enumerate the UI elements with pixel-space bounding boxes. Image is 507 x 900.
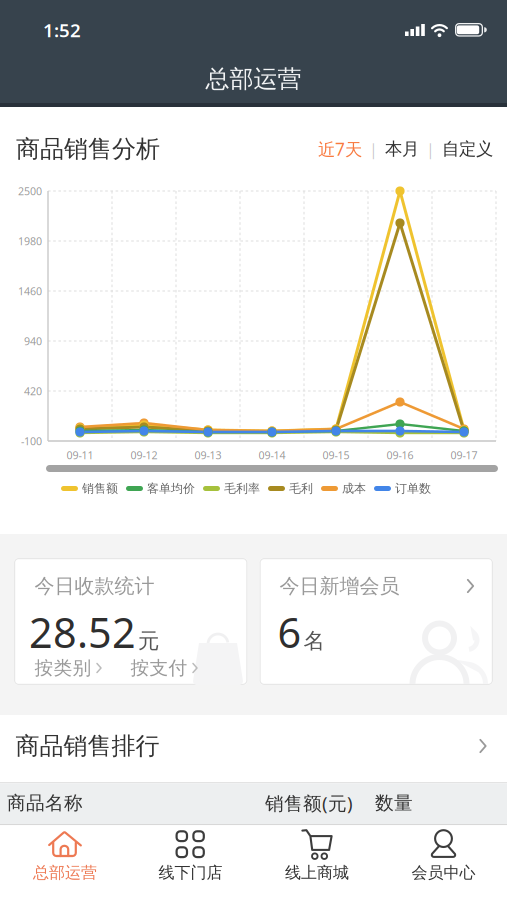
staticText: 940 — [24, 334, 42, 348]
button[interactable]: 商品销售排行 — [0, 715, 507, 777]
staticText: 2500 — [18, 184, 42, 198]
staticText: 6 — [277, 605, 301, 659]
staticText: 28.52 — [29, 605, 136, 659]
staticText: 本月 — [385, 138, 419, 160]
staticText: 09-15 — [322, 448, 349, 462]
button[interactable]: 线下门店 — [127, 825, 253, 899]
staticText: 自定义 — [442, 138, 493, 160]
staticText: 今日收款统计 — [34, 574, 154, 598]
staticText: 按类别 — [34, 656, 91, 679]
button[interactable]: 本月 — [385, 138, 419, 160]
button[interactable]: 今日新增会员 — [259, 558, 493, 685]
staticText: 线上商城 — [285, 863, 349, 883]
button[interactable]: 线上商城 — [254, 825, 380, 899]
staticText: 会员中心 — [411, 863, 475, 883]
button[interactable]: 自定义 — [442, 138, 493, 160]
staticText: 名 — [303, 628, 324, 654]
staticText: 按支付 — [130, 656, 187, 679]
staticText: 销售额(元) — [265, 791, 353, 815]
button[interactable]: 总部运营 — [2, 825, 128, 899]
staticText: | — [426, 138, 435, 160]
button[interactable]: 会员中心 — [380, 825, 506, 899]
staticText: 09-12 — [130, 448, 157, 462]
staticText: 09-17 — [450, 448, 477, 462]
staticText: 商品名称 — [7, 791, 83, 814]
staticText: 近7天 — [318, 137, 362, 160]
staticText: -100 — [21, 434, 42, 448]
staticText: 元 — [138, 628, 159, 654]
staticText: 1:52 — [43, 18, 81, 42]
staticText: 09-16 — [386, 448, 413, 462]
button[interactable]: 近7天 — [318, 137, 362, 160]
staticText: 总部运营 — [205, 64, 301, 94]
staticText: 1980 — [18, 234, 42, 248]
staticText: | — [369, 138, 378, 160]
staticText: 09-13 — [194, 448, 221, 462]
staticText: 成本 — [342, 481, 366, 496]
staticText: 今日新增会员 — [279, 574, 399, 598]
staticText: 09-14 — [258, 448, 285, 462]
staticText: 09-11 — [66, 448, 93, 462]
staticText: 线下门店 — [158, 863, 222, 883]
staticText: 数量 — [375, 791, 413, 814]
staticText: 总部运营 — [33, 863, 97, 883]
staticText: 客单均价 — [147, 481, 195, 496]
button[interactable]: 按类别 — [34, 656, 102, 679]
staticText: 毛利 — [289, 481, 313, 496]
staticText: 销售额 — [82, 481, 118, 496]
button[interactable]: 按支付 — [130, 656, 198, 679]
staticText: 1460 — [18, 284, 42, 298]
staticText: 毛利率 — [224, 481, 260, 496]
staticText: 订单数 — [395, 481, 431, 496]
staticText: 420 — [24, 384, 42, 398]
staticText: 商品销售排行 — [15, 731, 159, 761]
staticText: 商品销售分析 — [16, 134, 160, 164]
